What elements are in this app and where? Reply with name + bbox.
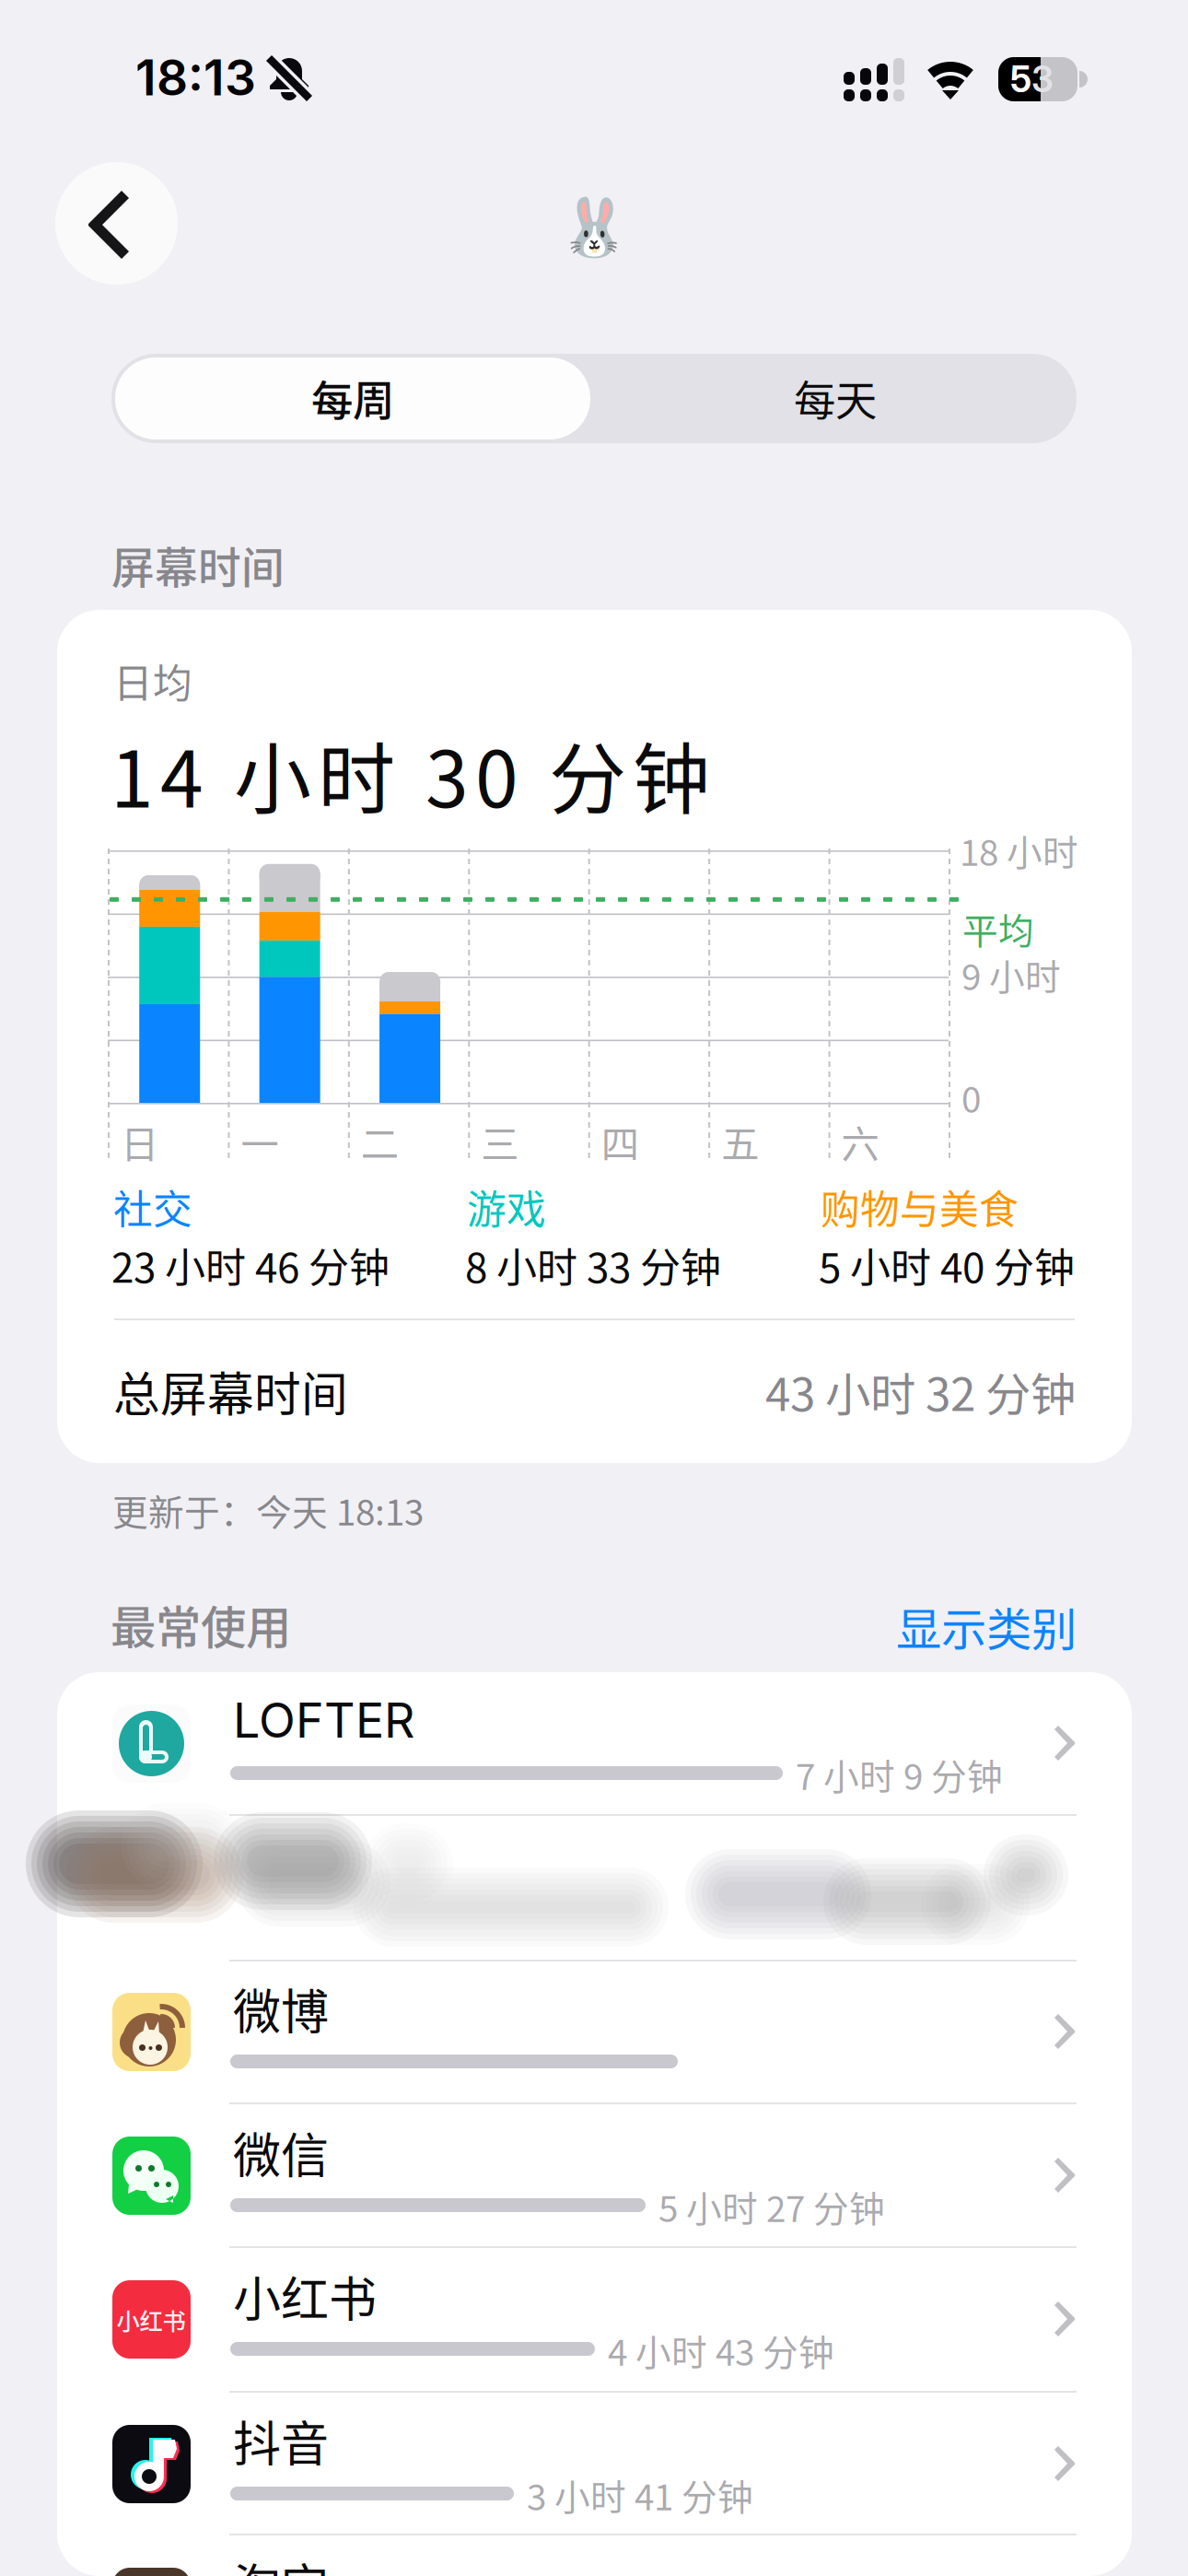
- button[interactable]: 微博: [0, 0, 1188, 2576]
- staticText: 社交: [113, 1178, 192, 1235]
- button[interactable]: 小红书: [0, 0, 1188, 2576]
- staticText: 日均: [113, 652, 192, 709]
- staticText: 5 小时 40 分钟: [819, 1236, 1075, 1294]
- button[interactable]: 抖音: [0, 0, 1188, 2576]
- button[interactable]: 每周: [111, 354, 594, 443]
- staticText: 平均: [962, 903, 1034, 954]
- staticText: 🐰: [559, 194, 629, 261]
- staticText: 3 小时 41 分钟: [527, 2469, 753, 2521]
- staticText: 每周: [311, 368, 394, 428]
- staticText: 五: [721, 1114, 759, 1169]
- staticText: 18 小时: [960, 825, 1078, 876]
- staticText: 7 小时 9 分钟: [796, 1749, 1003, 1800]
- staticText: 一: [241, 1114, 278, 1169]
- staticText: 5 小时 27 分钟: [658, 2181, 885, 2232]
- staticText: 二: [361, 1114, 399, 1169]
- staticText: 53: [1010, 58, 1054, 101]
- staticText: 六: [841, 1114, 879, 1169]
- staticText: 5: [1010, 58, 1031, 101]
- button[interactable]: 显示类别: [865, 1598, 1077, 1654]
- staticText: LOFTER: [233, 1691, 414, 1749]
- staticText: 每天: [794, 368, 877, 428]
- staticText: 9 小时: [961, 949, 1061, 1001]
- staticText: 日: [121, 1114, 158, 1169]
- staticText: 抖音: [233, 2406, 329, 2475]
- staticText: 23 小时 46 分钟: [111, 1236, 390, 1294]
- button[interactable]: 每天: [594, 354, 1077, 443]
- staticText: 最常使用: [111, 1591, 291, 1657]
- staticText: 小红书: [233, 2261, 377, 2331]
- staticText: 微信: [233, 2118, 329, 2187]
- staticText: 游戏: [467, 1178, 546, 1235]
- staticText: 四: [601, 1114, 639, 1169]
- staticText: 屏幕时间: [111, 534, 285, 596]
- staticText: 14 小时 30 分钟: [111, 718, 710, 830]
- staticText: 购物与美食: [821, 1178, 1019, 1235]
- button[interactable]: 微信: [0, 0, 1188, 2576]
- staticText: 小红书: [116, 2303, 186, 2337]
- staticText: 0: [961, 1071, 981, 1123]
- button[interactable]: 淘宝: [0, 0, 1188, 2576]
- staticText: 三: [481, 1114, 519, 1169]
- staticText: 总屏幕时间: [113, 1357, 348, 1425]
- staticText: 更新于：今天 18:13: [112, 1484, 424, 1536]
- button[interactable]: Back: [55, 162, 178, 285]
- staticText: 显示类别: [896, 1593, 1077, 1659]
- button[interactable]: LOFTER: [0, 0, 1188, 2576]
- staticText: 43 小时 32 分钟: [765, 1358, 1076, 1424]
- staticText: 18:13: [135, 48, 256, 107]
- staticText: 4 小时 43 分钟: [608, 2324, 834, 2376]
- staticText: 淘宝: [233, 2549, 329, 2576]
- staticText: 微博: [233, 1974, 329, 2043]
- staticText: 8 小时 33 分钟: [465, 1236, 721, 1294]
